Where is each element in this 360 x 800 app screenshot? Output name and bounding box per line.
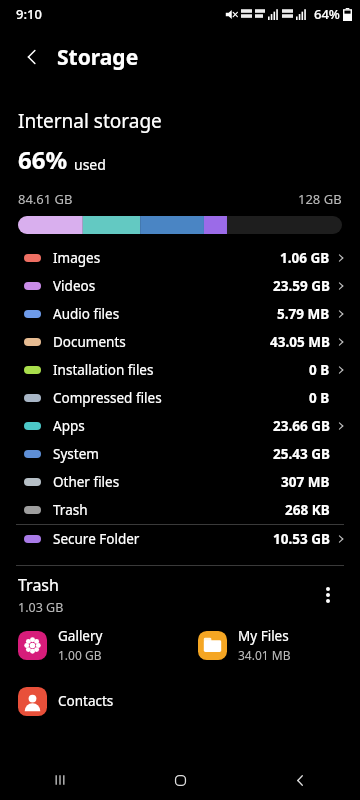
staticText: Installation files	[53, 361, 154, 379]
button[interactable]: Documents	[0, 328, 360, 356]
button[interactable]: Other files	[0, 468, 360, 496]
staticText: 9:10	[16, 5, 42, 23]
staticText: 5.79 MB	[277, 305, 330, 323]
staticText: Trash	[53, 501, 88, 519]
staticText: 0 B	[309, 389, 330, 407]
button[interactable]: Gallery	[0, 624, 180, 666]
staticText: Trash	[18, 574, 59, 596]
staticText: 23.66 GB	[273, 417, 330, 435]
staticText: 128 GB	[298, 190, 342, 208]
staticText: 1.00 GB	[58, 647, 102, 663]
button[interactable]: My Files	[180, 624, 360, 666]
staticText: Images	[53, 249, 101, 267]
button[interactable]: Recent apps	[0, 760, 120, 800]
staticText: 64%	[314, 5, 340, 23]
staticText: Other files	[53, 473, 120, 491]
staticText: Gallery	[58, 627, 103, 645]
button[interactable]: Videos	[0, 272, 360, 300]
staticText: 66%	[18, 143, 68, 176]
button[interactable]: Secure Folder	[0, 525, 360, 553]
staticText: Compressed files	[53, 389, 162, 407]
staticText: Documents	[53, 333, 126, 351]
staticText: 1.03 GB	[18, 599, 64, 616]
staticText: Apps	[53, 417, 85, 435]
staticText: 10.53 GB	[273, 530, 330, 548]
button[interactable]: Installation files	[0, 356, 360, 384]
staticText: 0 B	[309, 361, 330, 379]
button[interactable]: Back	[240, 760, 360, 800]
button[interactable]: Compressed files	[0, 384, 360, 412]
button[interactable]: Home	[120, 760, 240, 800]
staticText: Audio files	[53, 305, 120, 323]
button[interactable]: Contacts	[0, 680, 180, 722]
staticText: Storage	[57, 43, 139, 72]
button[interactable]: Trash	[0, 496, 360, 524]
staticText: 34.01 MB	[238, 647, 291, 663]
staticText: 43.05 MB	[270, 333, 330, 351]
staticText: System	[53, 445, 99, 463]
staticText: Internal storage	[18, 108, 162, 134]
staticText: 23.59 GB	[273, 277, 330, 295]
staticText: 84.61 GB	[18, 190, 73, 208]
staticText: My Files	[238, 627, 289, 645]
button[interactable]: System	[0, 440, 360, 468]
button[interactable]: Images	[0, 244, 360, 272]
staticText: Videos	[53, 277, 96, 295]
staticText: used	[74, 155, 106, 174]
staticText: Contacts	[58, 692, 114, 710]
button[interactable]: Audio files	[0, 300, 360, 328]
button[interactable]: Apps	[0, 412, 360, 440]
staticText: 307 MB	[281, 473, 330, 491]
staticText: 268 KB	[285, 501, 330, 519]
staticText: 1.06 GB	[280, 249, 330, 267]
staticText: 25.43 GB	[273, 445, 330, 463]
button[interactable]: More options	[308, 575, 348, 615]
staticText: Secure Folder	[53, 530, 140, 548]
button[interactable]: Back	[10, 35, 54, 79]
